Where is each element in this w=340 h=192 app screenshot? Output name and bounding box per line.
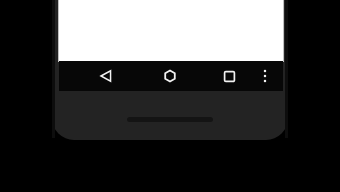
button[interactable]: Recent apps (216, 63, 242, 89)
button[interactable]: Home (157, 63, 183, 89)
button[interactable]: More options (254, 63, 276, 89)
button[interactable]: Back (93, 63, 119, 89)
